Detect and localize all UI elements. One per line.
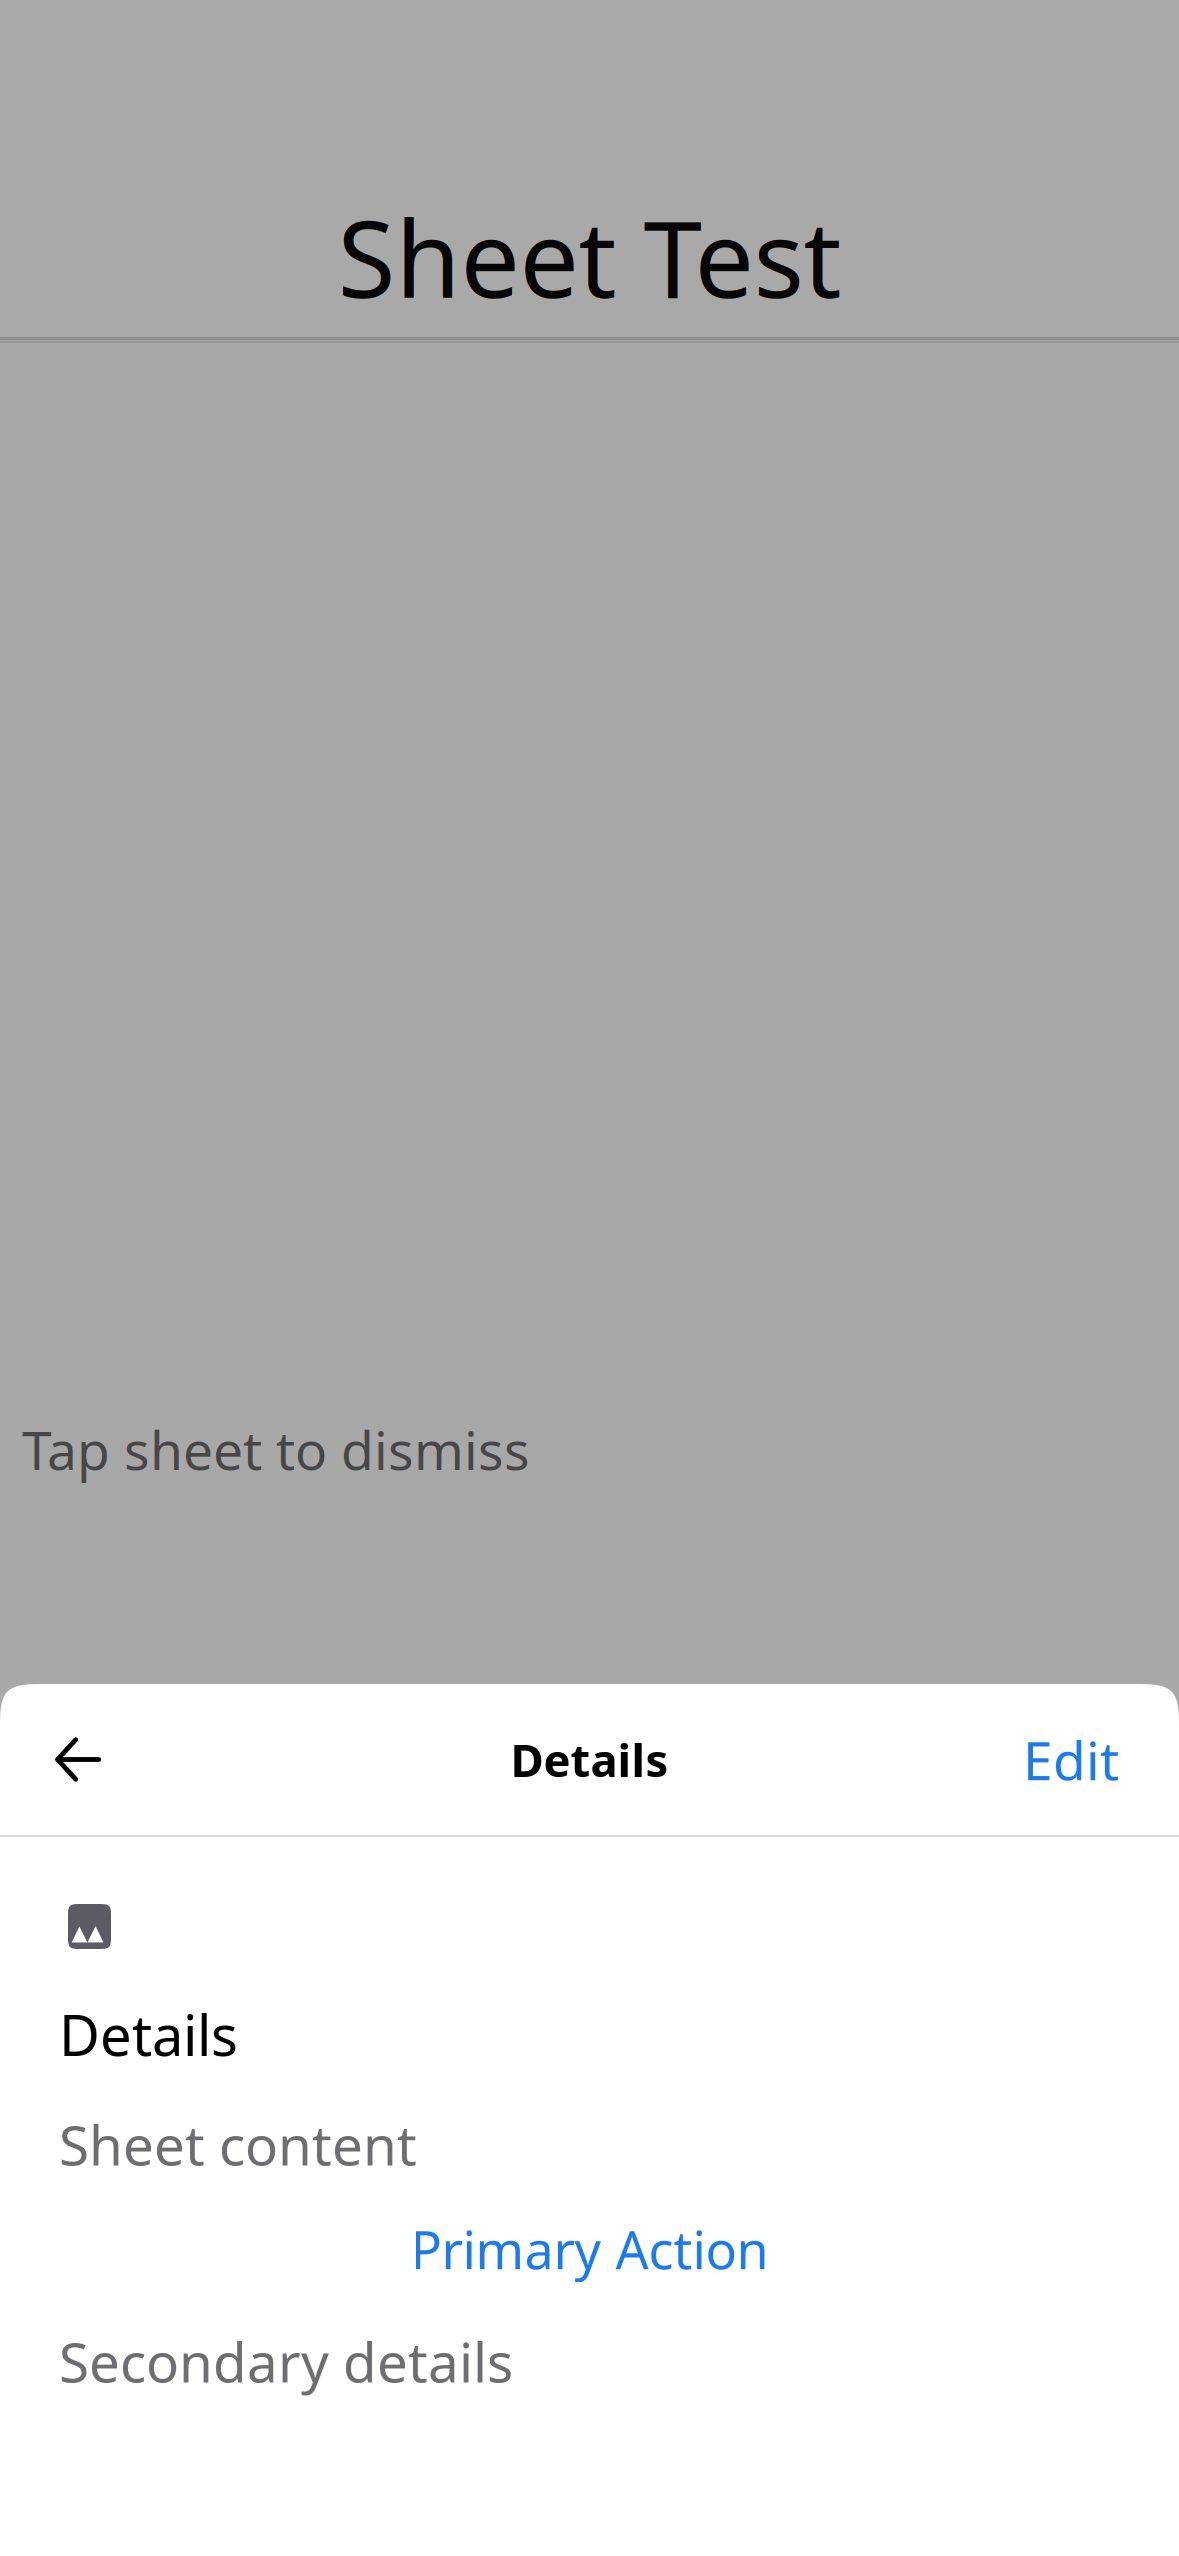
- staticText: Secondary details: [59, 2325, 513, 2398]
- button[interactable]: Edit: [1016, 1700, 1126, 1818]
- staticText: Primary Action: [410, 2214, 768, 2284]
- staticText: Tap sheet to dismiss: [22, 1414, 530, 1485]
- staticText: Sheet Test: [337, 187, 841, 327]
- staticText: Details: [510, 1729, 668, 1790]
- button[interactable]: Primary Action: [0, 2218, 1179, 2280]
- staticText: Details: [59, 1997, 238, 2071]
- button[interactable]: Dismiss sheet: [0, 0, 1179, 1684]
- button[interactable]: Back: [23, 1700, 133, 1818]
- staticText: Edit: [1023, 1724, 1119, 1795]
- staticText: Sheet content: [59, 2108, 417, 2181]
